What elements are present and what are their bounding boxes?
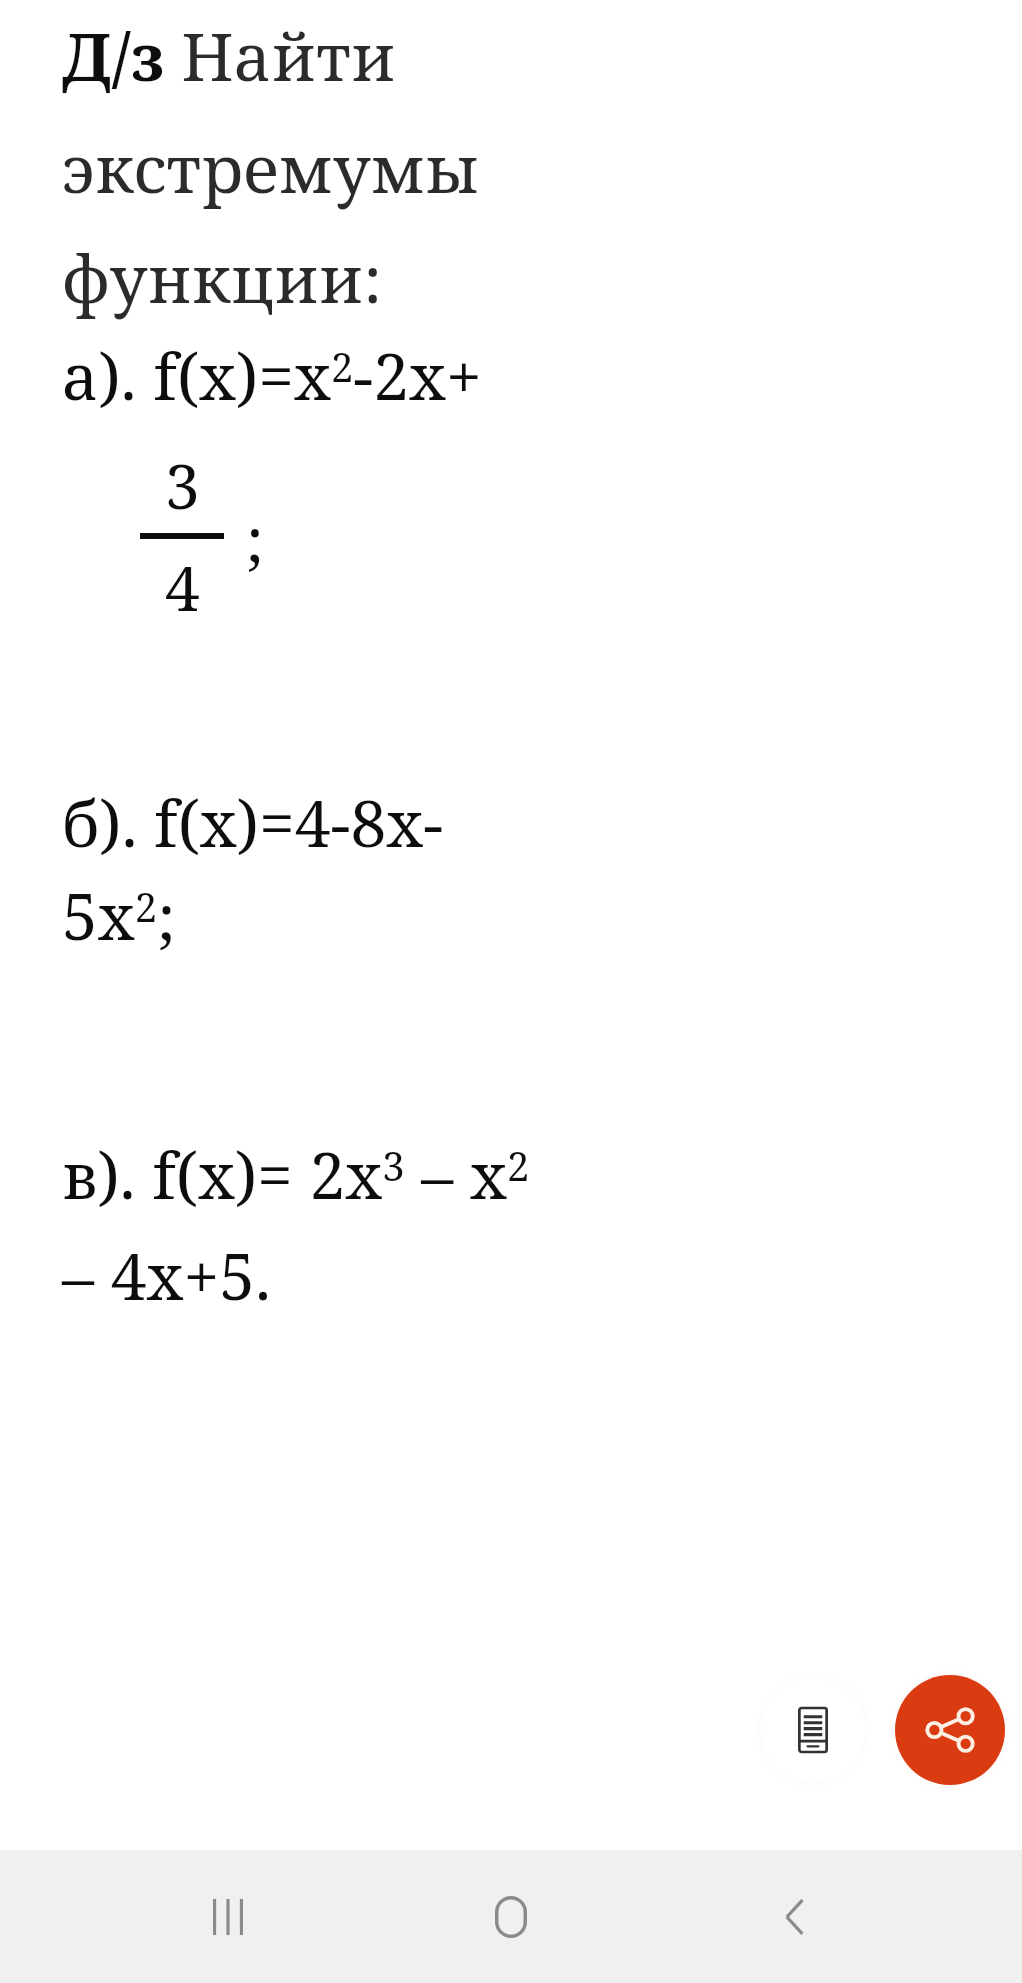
staticText: 3 — [165, 443, 200, 527]
staticText: экстремумы — [62, 122, 480, 212]
staticText: – 4x+5. — [62, 1232, 271, 1319]
staticText: ; — [246, 496, 264, 580]
staticText: в). f(x)= 2x3 – x2 — [62, 1131, 530, 1218]
staticText: 4 — [165, 545, 200, 629]
staticText: а). f(x)=x2-2x+ — [62, 332, 482, 419]
staticText: Д/з Найти — [62, 10, 396, 100]
staticText: б). f(x)=4-8x- — [62, 779, 443, 866]
button[interactable]: Back — [739, 1862, 849, 1972]
button[interactable]: Recent apps — [173, 1862, 283, 1972]
button[interactable]: Open reader — [761, 1678, 865, 1782]
button[interactable]: Share — [895, 1675, 1005, 1785]
staticText: функции: — [62, 232, 383, 322]
staticText: 5x2; — [62, 872, 176, 959]
button[interactable]: Home — [456, 1862, 566, 1972]
